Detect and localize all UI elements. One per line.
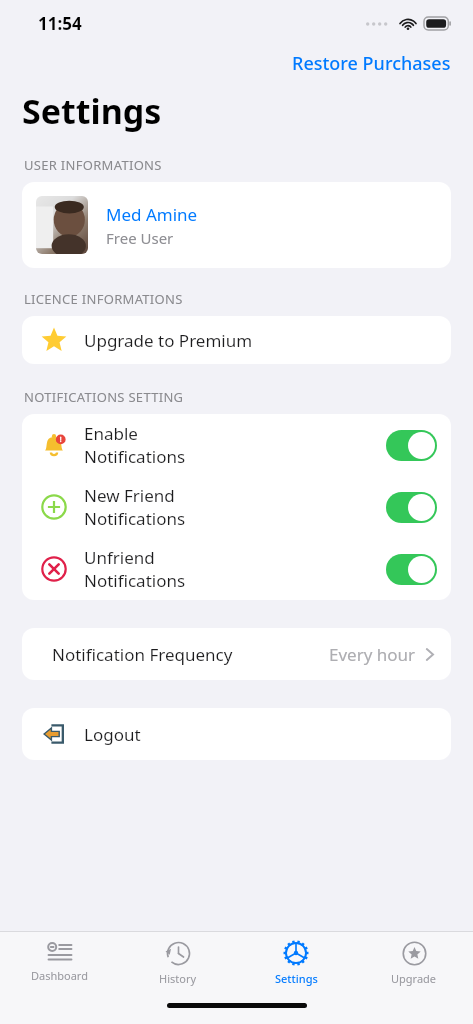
button[interactable]: Upgrade xyxy=(355,932,473,994)
staticText: Upgrade to Premium xyxy=(84,329,253,352)
button[interactable]: Enable xyxy=(22,414,451,476)
button[interactable]: Unfriend xyxy=(22,538,451,600)
staticText: USER INFORMATIONS xyxy=(24,156,162,174)
button[interactable]: Toggle on xyxy=(386,554,437,585)
staticText: Restore Purchases xyxy=(292,51,451,76)
button[interactable]: New Friend xyxy=(22,476,451,538)
staticText: Unfriend xyxy=(84,546,155,569)
staticText: Logout xyxy=(84,723,141,746)
staticText: Notifications xyxy=(84,445,186,468)
button[interactable]: Notification Frequency xyxy=(22,628,451,680)
staticText: Notifications xyxy=(84,569,186,592)
staticText: Upgrade xyxy=(391,971,437,986)
staticText: Settings xyxy=(275,971,318,986)
button[interactable]: Dashboard xyxy=(0,932,119,994)
staticText: LICENCE INFORMATIONS xyxy=(24,290,183,308)
button[interactable]: Restore Purchases xyxy=(270,47,473,80)
staticText: Every hour xyxy=(329,643,416,666)
button[interactable]: Settings xyxy=(237,932,355,994)
staticText: Notifications xyxy=(84,507,186,530)
staticText: Dashboard xyxy=(31,968,88,983)
staticText: NOTIFICATIONS SETTING xyxy=(24,388,184,406)
staticText: Med Amine xyxy=(106,203,198,226)
staticText: 11:54 xyxy=(38,12,82,35)
button[interactable]: Upgrade to Premium xyxy=(22,316,451,364)
staticText: Enable xyxy=(84,422,138,445)
button[interactable]: Logout xyxy=(22,708,451,760)
staticText: History xyxy=(159,971,197,986)
button[interactable]: Toggle on xyxy=(386,430,437,461)
staticText: Free User xyxy=(106,228,174,248)
staticText: Settings xyxy=(22,88,162,134)
staticText: New Friend xyxy=(84,484,175,507)
button[interactable]: History xyxy=(119,932,237,994)
button[interactable]: Med Amine xyxy=(22,182,451,268)
button[interactable]: Toggle on xyxy=(386,492,437,523)
staticText: Notification Frequency xyxy=(52,643,233,666)
